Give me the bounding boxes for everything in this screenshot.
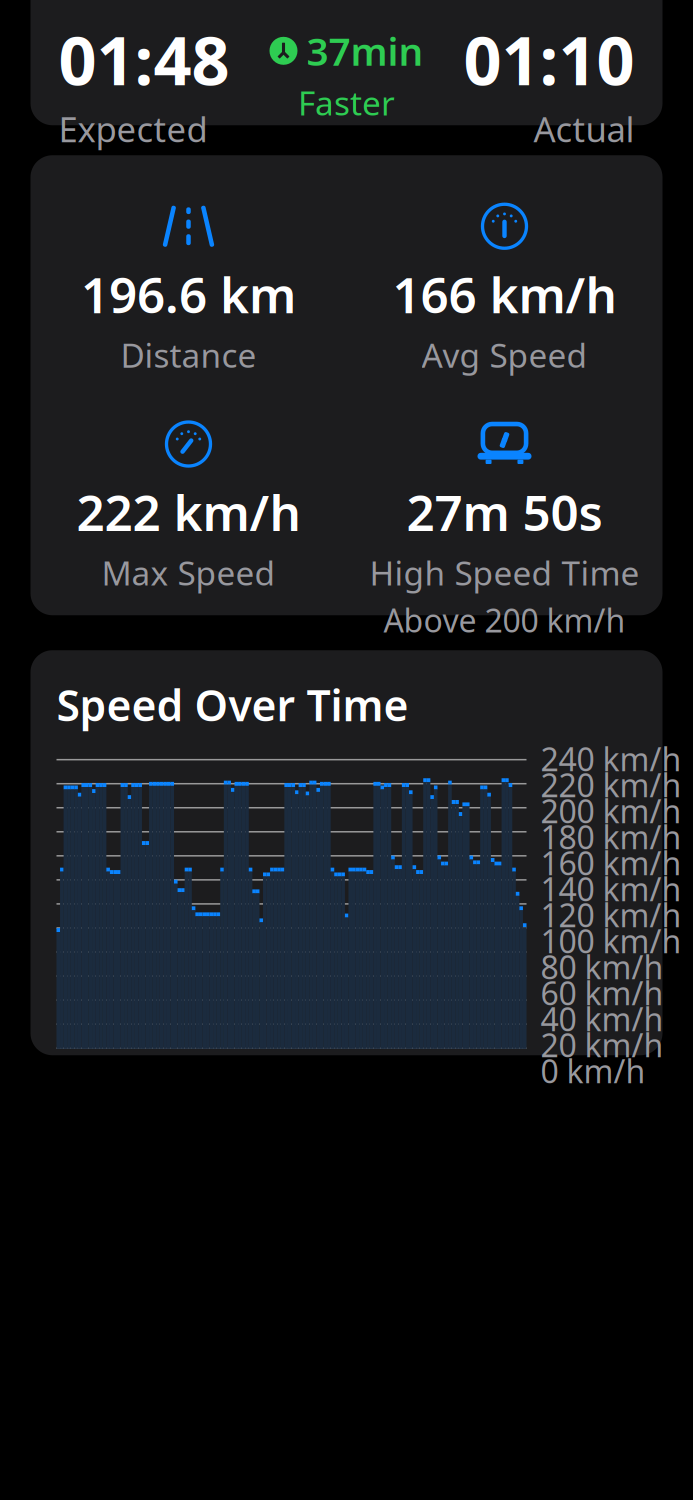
staticText: 40 km/h (540, 998, 663, 1040)
staticText: 100 km/h (540, 920, 681, 962)
staticText: 200 km/h (540, 790, 681, 832)
staticText: 01:10 (463, 15, 634, 104)
staticText: 240 km/h (540, 738, 681, 780)
staticText: 196.6 km (81, 261, 296, 327)
staticText: 222 km/h (76, 479, 300, 544)
staticText: Expected (58, 106, 207, 152)
staticText: Max Speed (101, 550, 275, 595)
staticText: 27m 50s (406, 479, 602, 544)
staticText: 0 km/h (540, 1050, 645, 1092)
staticText: 166 km/h (392, 261, 616, 327)
staticText: 140 km/h (540, 868, 681, 910)
staticText: 37min (306, 25, 423, 76)
staticText: Speed Over Time (56, 676, 408, 733)
staticText: 220 km/h (540, 764, 681, 806)
staticText: Above 200 km/h (383, 599, 625, 641)
staticText: 80 km/h (540, 946, 663, 988)
staticText: 160 km/h (540, 842, 681, 884)
staticText: 01:48 (58, 15, 229, 104)
staticText: Actual (533, 106, 634, 152)
staticText: 60 km/h (540, 972, 663, 1014)
staticText: Distance (120, 333, 256, 377)
staticText: 180 km/h (540, 816, 681, 858)
staticText: 20 km/h (540, 1024, 663, 1066)
staticText: Faster (298, 80, 395, 125)
staticText: 120 km/h (540, 894, 681, 936)
staticText: High Speed Time (369, 550, 639, 595)
staticText: Avg Speed (421, 333, 587, 377)
